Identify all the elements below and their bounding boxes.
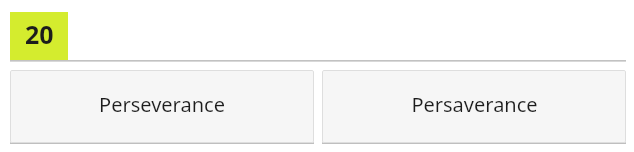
staticText: 20: [25, 17, 54, 51]
button[interactable]: 20: [10, 12, 68, 60]
staticText: Perseverance: [99, 91, 225, 118]
button[interactable]: Perseverance: [10, 70, 314, 143]
button[interactable]: Persaverance: [322, 70, 626, 143]
staticText: Persaverance: [411, 91, 538, 118]
